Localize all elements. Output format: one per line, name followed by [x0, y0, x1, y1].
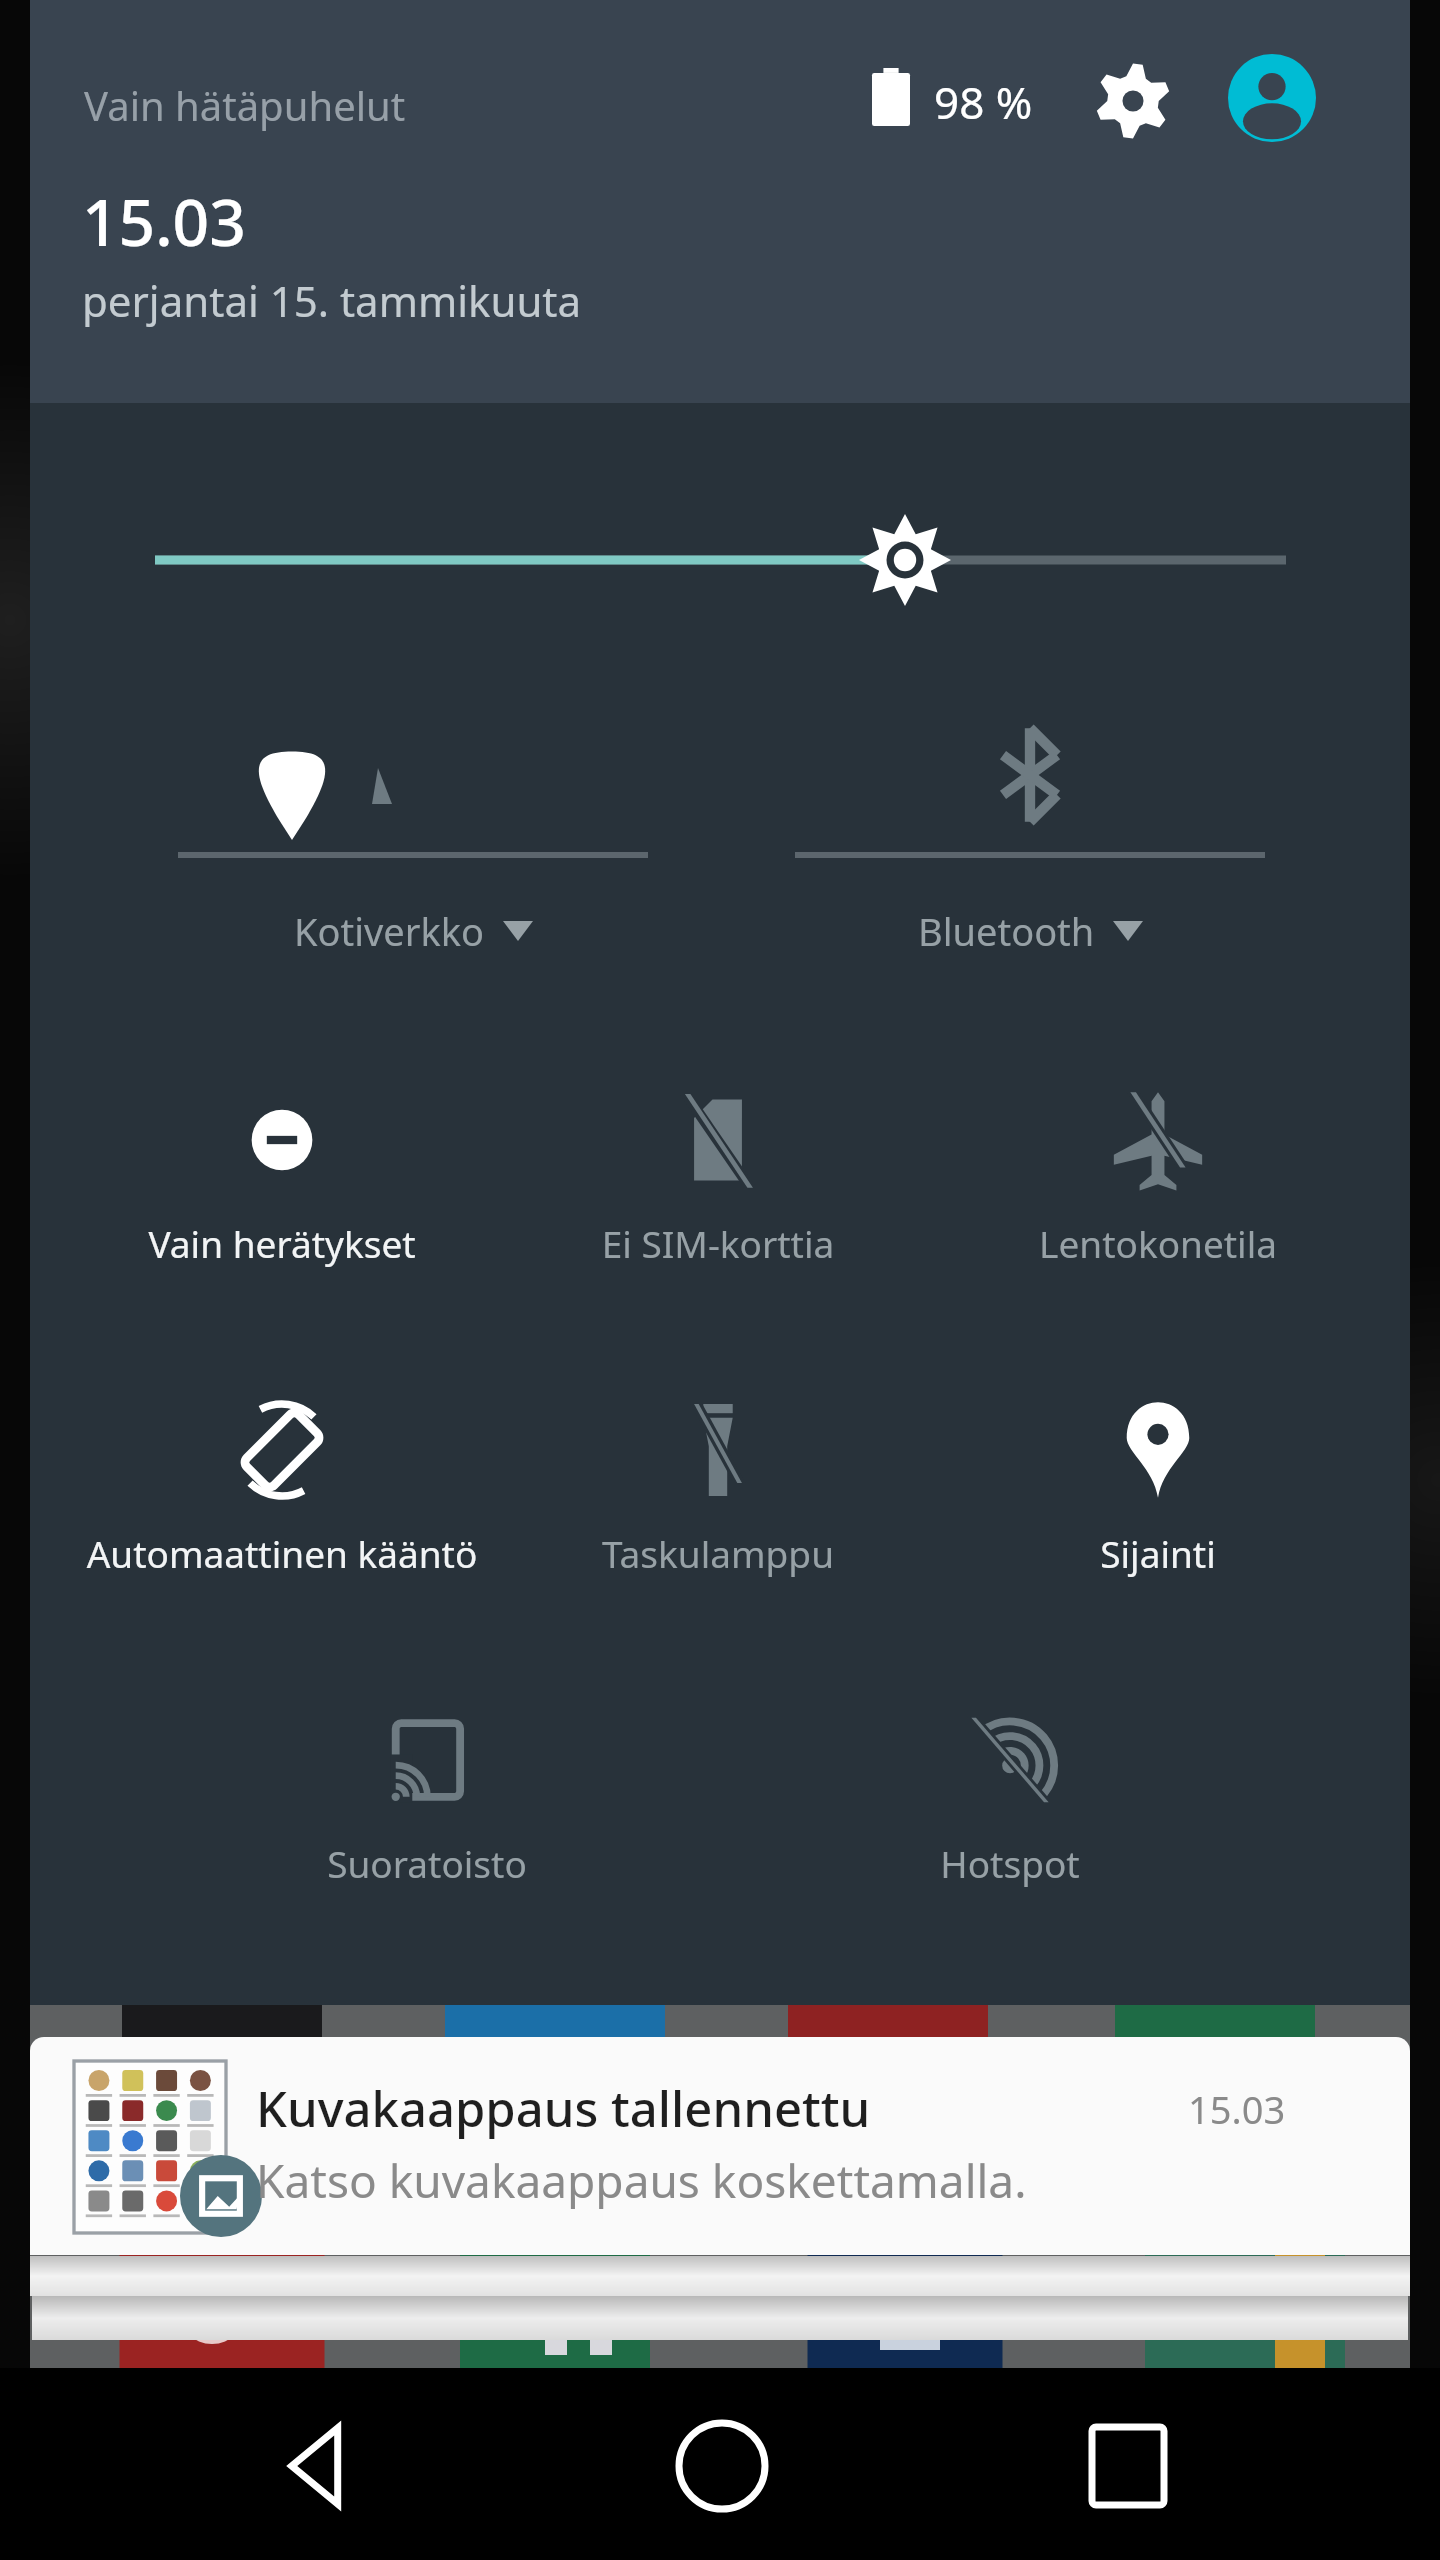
button[interactable]: Ei SIM-korttia — [508, 1030, 928, 1310]
button[interactable]: Bluetooth — [795, 700, 1265, 960]
button[interactable]: Vain herätykset — [72, 1030, 492, 1310]
staticText: Vain hätäpuhelut — [84, 78, 406, 132]
button[interactable]: 15.03 — [82, 178, 246, 265]
button[interactable]: Wi-Fi Kotiverkko — [178, 700, 648, 960]
staticText: 15.03 — [1188, 2083, 1286, 2135]
button[interactable]: Recent apps — [1020, 2390, 1240, 2560]
staticText: Taskulamppu — [483, 1528, 953, 1578]
button[interactable]: Suoratoisto — [217, 1650, 637, 1930]
staticText: Katso kuvakaappaus koskettamalla. — [256, 2149, 1027, 2212]
button[interactable]: perjantai 15. tammikuuta — [82, 272, 582, 329]
staticText: 15.03 — [82, 178, 246, 265]
button[interactable]: Settings — [1094, 62, 1172, 140]
button[interactable]: Brightness — [120, 500, 1320, 620]
staticText: Ei SIM-korttia — [483, 1218, 953, 1268]
staticText: Lentokonetila — [923, 1218, 1393, 1268]
other: Battery 98 percent — [872, 68, 910, 126]
button[interactable]: Lentokonetila — [948, 1030, 1368, 1310]
staticText: Kuvakaappaus tallennettu — [256, 2075, 871, 2142]
staticText: Sijainti — [923, 1528, 1393, 1578]
staticText: Hotspot — [775, 1838, 1245, 1888]
staticText: Bluetooth — [918, 905, 1095, 957]
button[interactable]: Taskulamppu — [508, 1340, 928, 1620]
button[interactable]: Hotspot — [800, 1650, 1220, 1930]
button[interactable]: Kuvakaappaus tallennettu — [30, 2037, 1410, 2255]
staticText: Kotiverkko — [294, 905, 485, 957]
button[interactable]: User account — [1228, 54, 1316, 142]
button[interactable]: Home — [615, 2390, 835, 2560]
staticText: 98 % — [934, 72, 1033, 132]
button[interactable]: Sijainti — [948, 1340, 1368, 1620]
staticText: Suoratoisto — [192, 1838, 662, 1888]
button[interactable]: Back — [210, 2390, 430, 2560]
staticText: Vain herätykset — [47, 1218, 517, 1268]
staticText: perjantai 15. tammikuuta — [82, 272, 582, 329]
button[interactable]: Automaattinen kääntö — [72, 1340, 492, 1620]
staticText: Automaattinen kääntö — [47, 1528, 517, 1578]
